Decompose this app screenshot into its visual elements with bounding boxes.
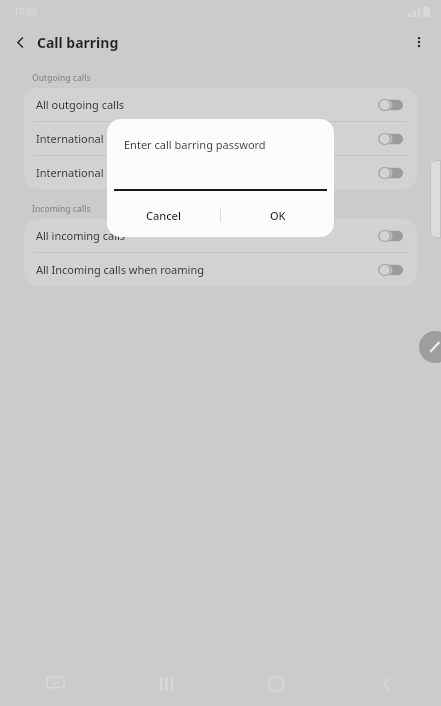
button[interactable]	[114, 173, 327, 191]
staticText: International calls except to home	[36, 165, 212, 180]
staticText: Incoming calls	[32, 203, 91, 215]
button[interactable]: All incoming calls	[24, 219, 417, 252]
staticText: Call barring	[37, 33, 119, 52]
button[interactable]: Toggle	[378, 98, 403, 112]
button[interactable]: OK	[221, 198, 334, 233]
staticText: Cancel	[146, 208, 181, 223]
staticText: OK	[270, 208, 286, 223]
button[interactable]: More options	[405, 28, 433, 56]
staticText: 10:00	[14, 5, 38, 17]
button[interactable]: All Incoming calls when roaming	[24, 253, 417, 286]
button[interactable]: Toggle	[378, 166, 403, 180]
button[interactable]: Back	[6, 28, 34, 56]
button[interactable]: Toggle	[378, 132, 403, 146]
button[interactable]: International calls except to home	[24, 156, 417, 189]
staticText: All incoming calls	[36, 228, 126, 243]
button[interactable]: Toggle	[378, 263, 403, 277]
button[interactable]: All outgoing calls	[24, 88, 417, 121]
button[interactable]: International calls	[24, 122, 417, 155]
staticText: All outgoing calls	[36, 97, 125, 112]
button[interactable]: Edit	[419, 331, 441, 363]
staticText: All Incoming calls when roaming	[36, 262, 204, 277]
button[interactable]: Toggle	[378, 229, 403, 243]
staticText: Outgoing calls	[32, 72, 91, 84]
staticText: International calls	[36, 131, 129, 146]
button[interactable]: Edge panel	[430, 160, 441, 238]
button[interactable]: Cancel	[107, 198, 220, 233]
staticText: Enter call barring password	[124, 137, 266, 152]
